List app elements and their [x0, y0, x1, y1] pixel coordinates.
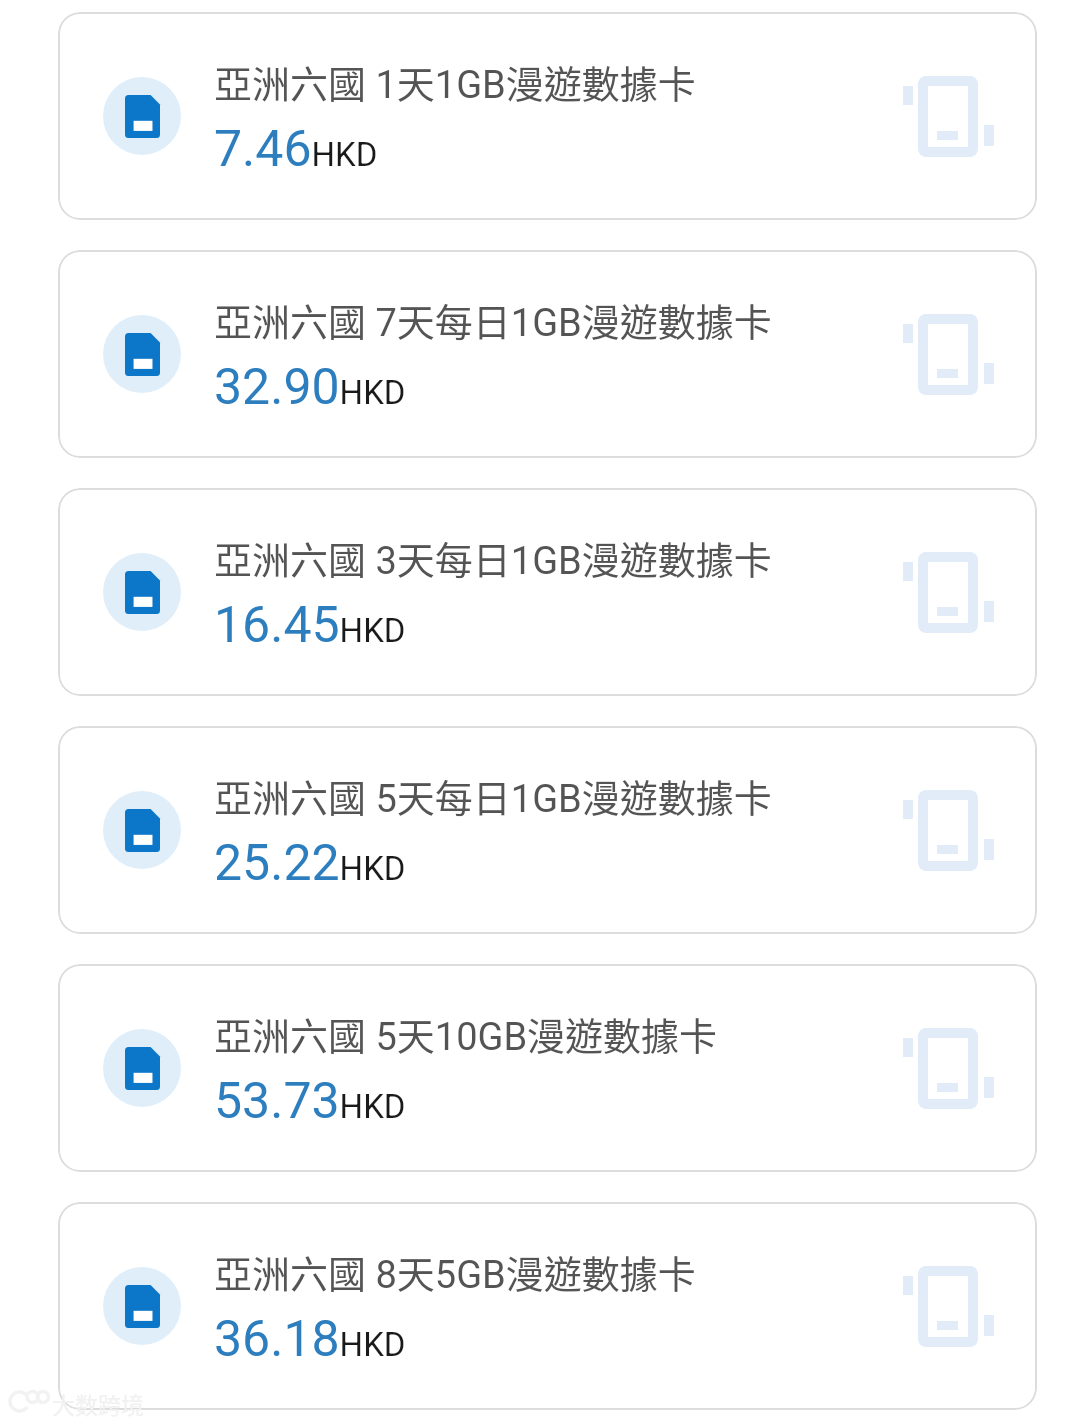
- other: SIM data plan: [103, 1267, 181, 1345]
- button[interactable]: SIM data plan: [58, 12, 1037, 220]
- other: SIM data plan: [103, 77, 181, 155]
- other: SIM data plan: [103, 553, 181, 631]
- staticText: 亞洲六國 1天1GB漫遊數據卡: [214, 54, 696, 109]
- staticText: 32.90HKD: [214, 358, 406, 417]
- staticText: 16.45HKD: [214, 596, 406, 655]
- button[interactable]: SIM data plan: [58, 488, 1037, 696]
- staticText: 36.18HKD: [214, 1310, 406, 1369]
- other: SIM data plan: [103, 315, 181, 393]
- staticText: 大数跨境: [52, 1387, 144, 1420]
- staticText: 亞洲六國 8天5GB漫遊數據卡: [214, 1244, 696, 1299]
- button[interactable]: SIM data plan: [58, 726, 1037, 934]
- staticText: 亞洲六國 5天10GB漫遊數據卡: [214, 1006, 718, 1061]
- staticText: 亞洲六國 5天每日1GB漫遊數據卡: [214, 768, 772, 823]
- staticText: 25.22HKD: [214, 834, 406, 893]
- button[interactable]: SIM data plan: [58, 964, 1037, 1172]
- other: SIM data plan: [103, 791, 181, 869]
- staticText: 亞洲六國 7天每日1GB漫遊數據卡: [214, 292, 772, 347]
- staticText: 53.73HKD: [214, 1072, 406, 1131]
- button[interactable]: SIM data plan: [58, 1202, 1037, 1410]
- other: SIM data plan: [103, 1029, 181, 1107]
- staticText: 7.46HKD: [214, 120, 378, 179]
- button[interactable]: SIM data plan: [58, 250, 1037, 458]
- staticText: 亞洲六國 3天每日1GB漫遊數據卡: [214, 530, 772, 585]
